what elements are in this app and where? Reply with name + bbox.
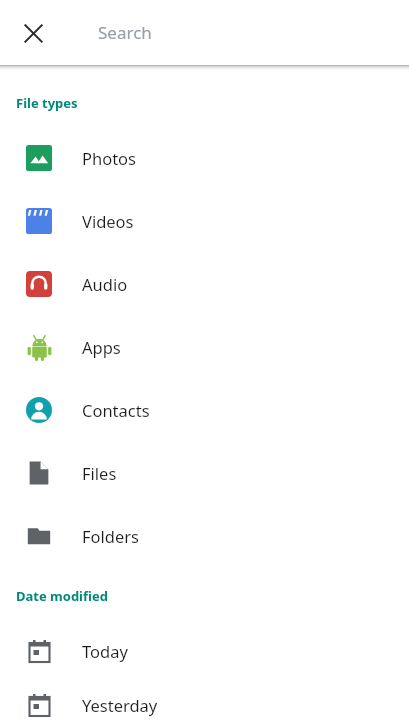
button[interactable]: Yesterday	[0, 682, 409, 727]
staticText: Files	[82, 462, 117, 484]
button[interactable]: Photos	[0, 126, 409, 189]
staticText: Search	[98, 21, 152, 44]
button[interactable]: Close search	[15, 15, 51, 51]
staticText: Contacts	[82, 399, 150, 421]
staticText: Photos	[82, 147, 137, 169]
staticText: Date modified	[16, 587, 108, 605]
button[interactable]: Files	[0, 441, 409, 504]
staticText: Yesterday	[82, 694, 158, 716]
staticText: Apps	[82, 336, 121, 358]
button[interactable]: Today	[0, 619, 409, 682]
button[interactable]: Folders	[0, 504, 409, 567]
staticText: Audio	[82, 273, 128, 295]
button[interactable]: Contacts	[0, 378, 409, 441]
button[interactable]: Search	[98, 0, 397, 65]
button[interactable]: Audio	[0, 252, 409, 315]
staticText: Folders	[82, 525, 139, 547]
staticText: Today	[82, 640, 128, 662]
staticText: Videos	[82, 210, 134, 232]
button[interactable]: Videos	[0, 189, 409, 252]
button[interactable]: Apps	[0, 315, 409, 378]
staticText: File types	[16, 94, 78, 112]
